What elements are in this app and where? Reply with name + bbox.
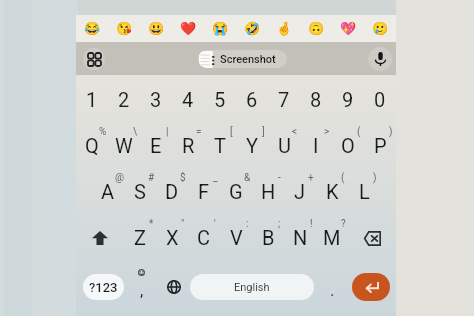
button[interactable]: Screenshot <box>198 50 287 68</box>
staticText: ) <box>373 172 377 184</box>
staticText: 🙃 <box>308 21 325 36</box>
button[interactable]: Open toolbar <box>83 48 105 70</box>
button[interactable]: ; <box>252 215 284 261</box>
button[interactable]: English <box>190 274 314 300</box>
button[interactable]: " <box>156 215 188 261</box>
button[interactable]: 🙃 <box>300 15 332 42</box>
staticText: B <box>262 226 275 249</box>
staticText: 1 <box>86 88 98 111</box>
staticText: Y <box>246 134 259 157</box>
button[interactable]: 6 <box>236 77 268 123</box>
staticText: & <box>244 172 251 184</box>
button[interactable]: \ <box>108 123 140 169</box>
staticText: 🤣 <box>244 21 261 36</box>
staticText: ! <box>310 218 313 230</box>
button[interactable]: ( <box>316 169 348 215</box>
staticText: > <box>324 126 330 138</box>
button[interactable]: 🤣 <box>236 15 268 42</box>
staticText: " <box>181 218 185 230</box>
button[interactable]: 😘 <box>108 15 140 42</box>
button[interactable]: : <box>220 215 252 261</box>
button[interactable]: [ <box>204 123 236 169</box>
staticText: ? <box>341 218 346 230</box>
button[interactable]: ! <box>284 215 316 261</box>
button[interactable]: 🤞 <box>268 15 300 42</box>
staticText: P <box>374 134 387 157</box>
button[interactable]: * <box>124 215 156 261</box>
staticText: X <box>166 226 179 249</box>
button[interactable]: Shift <box>76 215 124 261</box>
button[interactable]: = <box>172 123 204 169</box>
button[interactable]: . <box>317 264 348 309</box>
staticText: 7 <box>278 88 290 111</box>
staticText: M <box>323 226 341 249</box>
staticText: . <box>330 280 335 300</box>
button[interactable]: # <box>124 169 156 215</box>
staticText: E <box>150 134 162 157</box>
button[interactable]: 😂 <box>76 15 108 42</box>
button[interactable]: Backspace <box>348 215 396 261</box>
button[interactable]: + <box>284 169 316 215</box>
button[interactable]: 😭 <box>204 15 236 42</box>
staticText: Z <box>134 226 146 249</box>
staticText: < <box>292 126 298 138</box>
button[interactable]: 2 <box>108 77 140 123</box>
staticText: \ <box>133 126 138 138</box>
button[interactable]: ? <box>316 215 348 261</box>
staticText: O <box>341 134 355 157</box>
button[interactable]: ?123 <box>83 274 124 300</box>
button[interactable]: 5 <box>204 77 236 123</box>
button[interactable]: ] <box>236 123 268 169</box>
staticText: 😃 <box>148 21 165 36</box>
button[interactable]: | <box>140 123 172 169</box>
button[interactable]: ) <box>364 123 396 169</box>
button[interactable]: > <box>300 123 332 169</box>
button[interactable]: _ <box>188 169 220 215</box>
button[interactable]: 4 <box>172 77 204 123</box>
button[interactable]: - <box>252 169 284 215</box>
button[interactable]: 3 <box>140 77 172 123</box>
button[interactable]: 7 <box>268 77 300 123</box>
staticText: # <box>148 172 155 184</box>
button[interactable]: 1 <box>76 77 108 123</box>
staticText: 6 <box>246 88 258 111</box>
button[interactable]: ) <box>348 169 380 215</box>
button[interactable]: ( <box>332 123 364 169</box>
button[interactable]: ❤️ <box>172 15 204 42</box>
staticText: 9 <box>342 88 354 111</box>
button[interactable]: , <box>126 264 157 309</box>
button[interactable]: % <box>76 123 108 169</box>
button[interactable]: ' <box>188 215 220 261</box>
button[interactable]: < <box>268 123 300 169</box>
button[interactable]: 9 <box>332 77 364 123</box>
staticText: ) <box>389 126 393 138</box>
button[interactable]: Enter <box>352 273 390 301</box>
button[interactable]: & <box>220 169 252 215</box>
staticText: 💖 <box>340 21 357 36</box>
button[interactable]: Voice input <box>368 47 392 71</box>
button[interactable]: $ <box>156 169 188 215</box>
staticText: @ <box>115 172 124 184</box>
staticText: D <box>165 180 179 203</box>
staticText: ( <box>341 172 345 184</box>
button[interactable]: 8 <box>300 77 332 123</box>
staticText: K <box>326 180 339 203</box>
button[interactable]: 0 <box>364 77 396 123</box>
button[interactable]: @ <box>92 169 124 215</box>
staticText: 🤞 <box>276 21 293 36</box>
staticText: C <box>197 226 211 249</box>
button[interactable]: Change language <box>158 264 189 309</box>
staticText: F <box>198 180 210 203</box>
staticText: ' <box>214 218 216 230</box>
staticText: - <box>278 172 281 184</box>
staticText: * <box>149 218 154 230</box>
button[interactable]: 🥲 <box>364 15 396 42</box>
staticText: G <box>229 180 243 203</box>
staticText: : <box>246 218 249 230</box>
staticText: V <box>230 226 243 249</box>
button[interactable]: 😃 <box>140 15 172 42</box>
staticText: T <box>214 134 226 157</box>
staticText: ( <box>357 126 361 138</box>
staticText: English <box>234 281 270 294</box>
button[interactable]: 💖 <box>332 15 364 42</box>
